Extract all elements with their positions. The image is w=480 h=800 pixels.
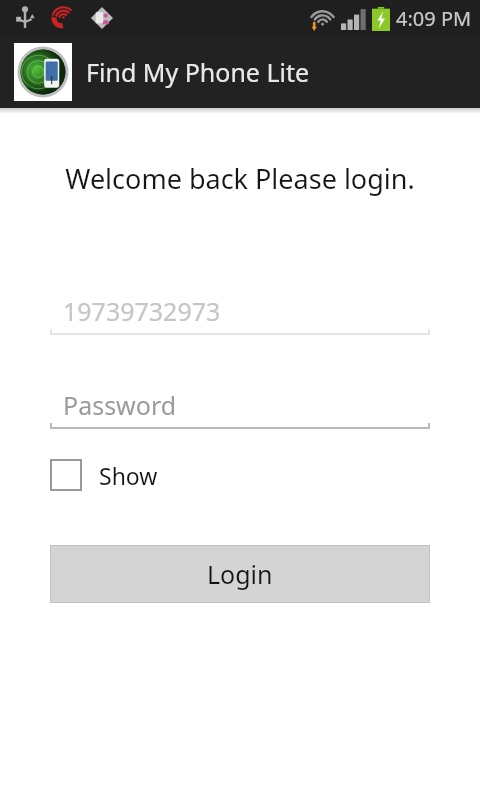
- staticText: Login: [207, 557, 273, 591]
- staticText: 4:09 PM: [396, 5, 472, 32]
- button[interactable]: Show: [50, 455, 170, 495]
- staticText: Find My Phone Lite: [86, 55, 310, 89]
- button[interactable]: 19739732973: [50, 292, 430, 339]
- button[interactable]: Login: [50, 545, 430, 603]
- button[interactable]: Password: [50, 386, 430, 433]
- staticText: Show: [99, 460, 158, 491]
- staticText: Welcome back Please login.: [0, 160, 480, 197]
- staticText: 19739732973: [63, 294, 221, 328]
- staticText: Password: [63, 388, 177, 422]
